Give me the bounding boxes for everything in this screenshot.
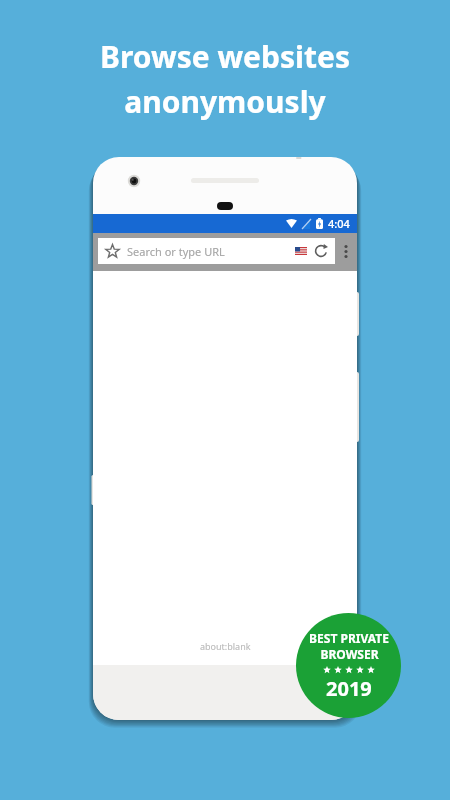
other: Bookmark (105, 244, 120, 259)
staticText: 4:04 (328, 216, 350, 231)
button[interactable]: More options (335, 238, 357, 264)
button[interactable]: Bookmark (98, 238, 335, 264)
button[interactable]: BEST PRIVATE (296, 613, 401, 718)
staticText: Search or type URL (127, 244, 225, 259)
staticText: anonymously (124, 81, 326, 122)
staticText: 2019 (326, 675, 372, 702)
other: Translate (295, 247, 307, 255)
staticText: about:blank (200, 640, 251, 652)
staticText: Browse websites (100, 36, 350, 77)
staticText: BROWSER (320, 646, 379, 662)
other: Reload (314, 244, 328, 258)
staticText: BEST PRIVATE (309, 630, 389, 646)
